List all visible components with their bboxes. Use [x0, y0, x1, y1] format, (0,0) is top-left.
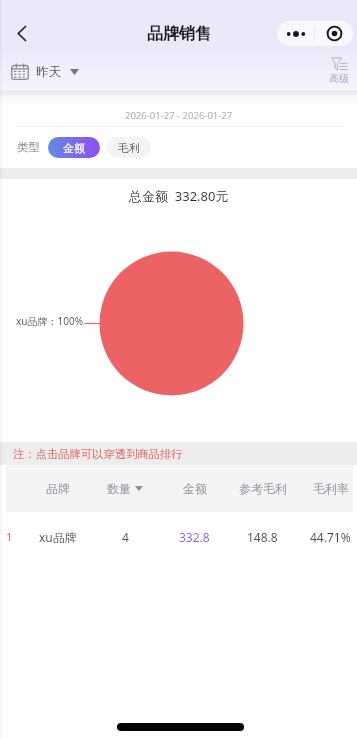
staticText: 332.8 — [179, 529, 210, 545]
staticText: 数量 — [107, 481, 131, 496]
button[interactable]: 金额 — [48, 137, 100, 158]
staticText: 品牌 — [46, 481, 70, 496]
button[interactable]: 毛利 — [107, 137, 151, 158]
staticText: 44.71% — [310, 529, 351, 545]
button[interactable]: Back — [6, 17, 38, 49]
button[interactable]: 数量 — [90, 465, 160, 512]
button[interactable]: Close mini program — [315, 21, 353, 46]
staticText: 2026-01-27 - 2026-01-27 — [125, 109, 233, 122]
button[interactable]: More options — [277, 21, 314, 46]
staticText: 金额 — [183, 481, 207, 496]
button[interactable]: 1 — [0, 512, 357, 561]
staticText: 毛利率 — [313, 481, 349, 496]
staticText: 注：点击品牌可以穿透到商品排行 — [13, 447, 183, 461]
button[interactable]: 昨天 — [11, 63, 79, 80]
staticText: 金额 — [63, 141, 85, 155]
staticText: 昨天 — [36, 64, 61, 80]
staticText: 1 — [6, 529, 13, 545]
staticText: xu品牌 — [39, 529, 77, 545]
staticText: xu品牌：100% — [16, 314, 83, 328]
staticText: 高级 — [329, 72, 349, 85]
staticText: 品牌销售 — [147, 24, 211, 44]
staticText: 参考毛利 — [239, 481, 287, 496]
staticText: 4 — [122, 529, 129, 545]
staticText: 类型 — [17, 140, 40, 154]
staticText: 148.8 — [247, 529, 278, 545]
staticText: 总金额 332.80元 — [129, 187, 229, 205]
button[interactable]: 高级 — [327, 57, 351, 85]
staticText: 毛利 — [118, 141, 140, 155]
